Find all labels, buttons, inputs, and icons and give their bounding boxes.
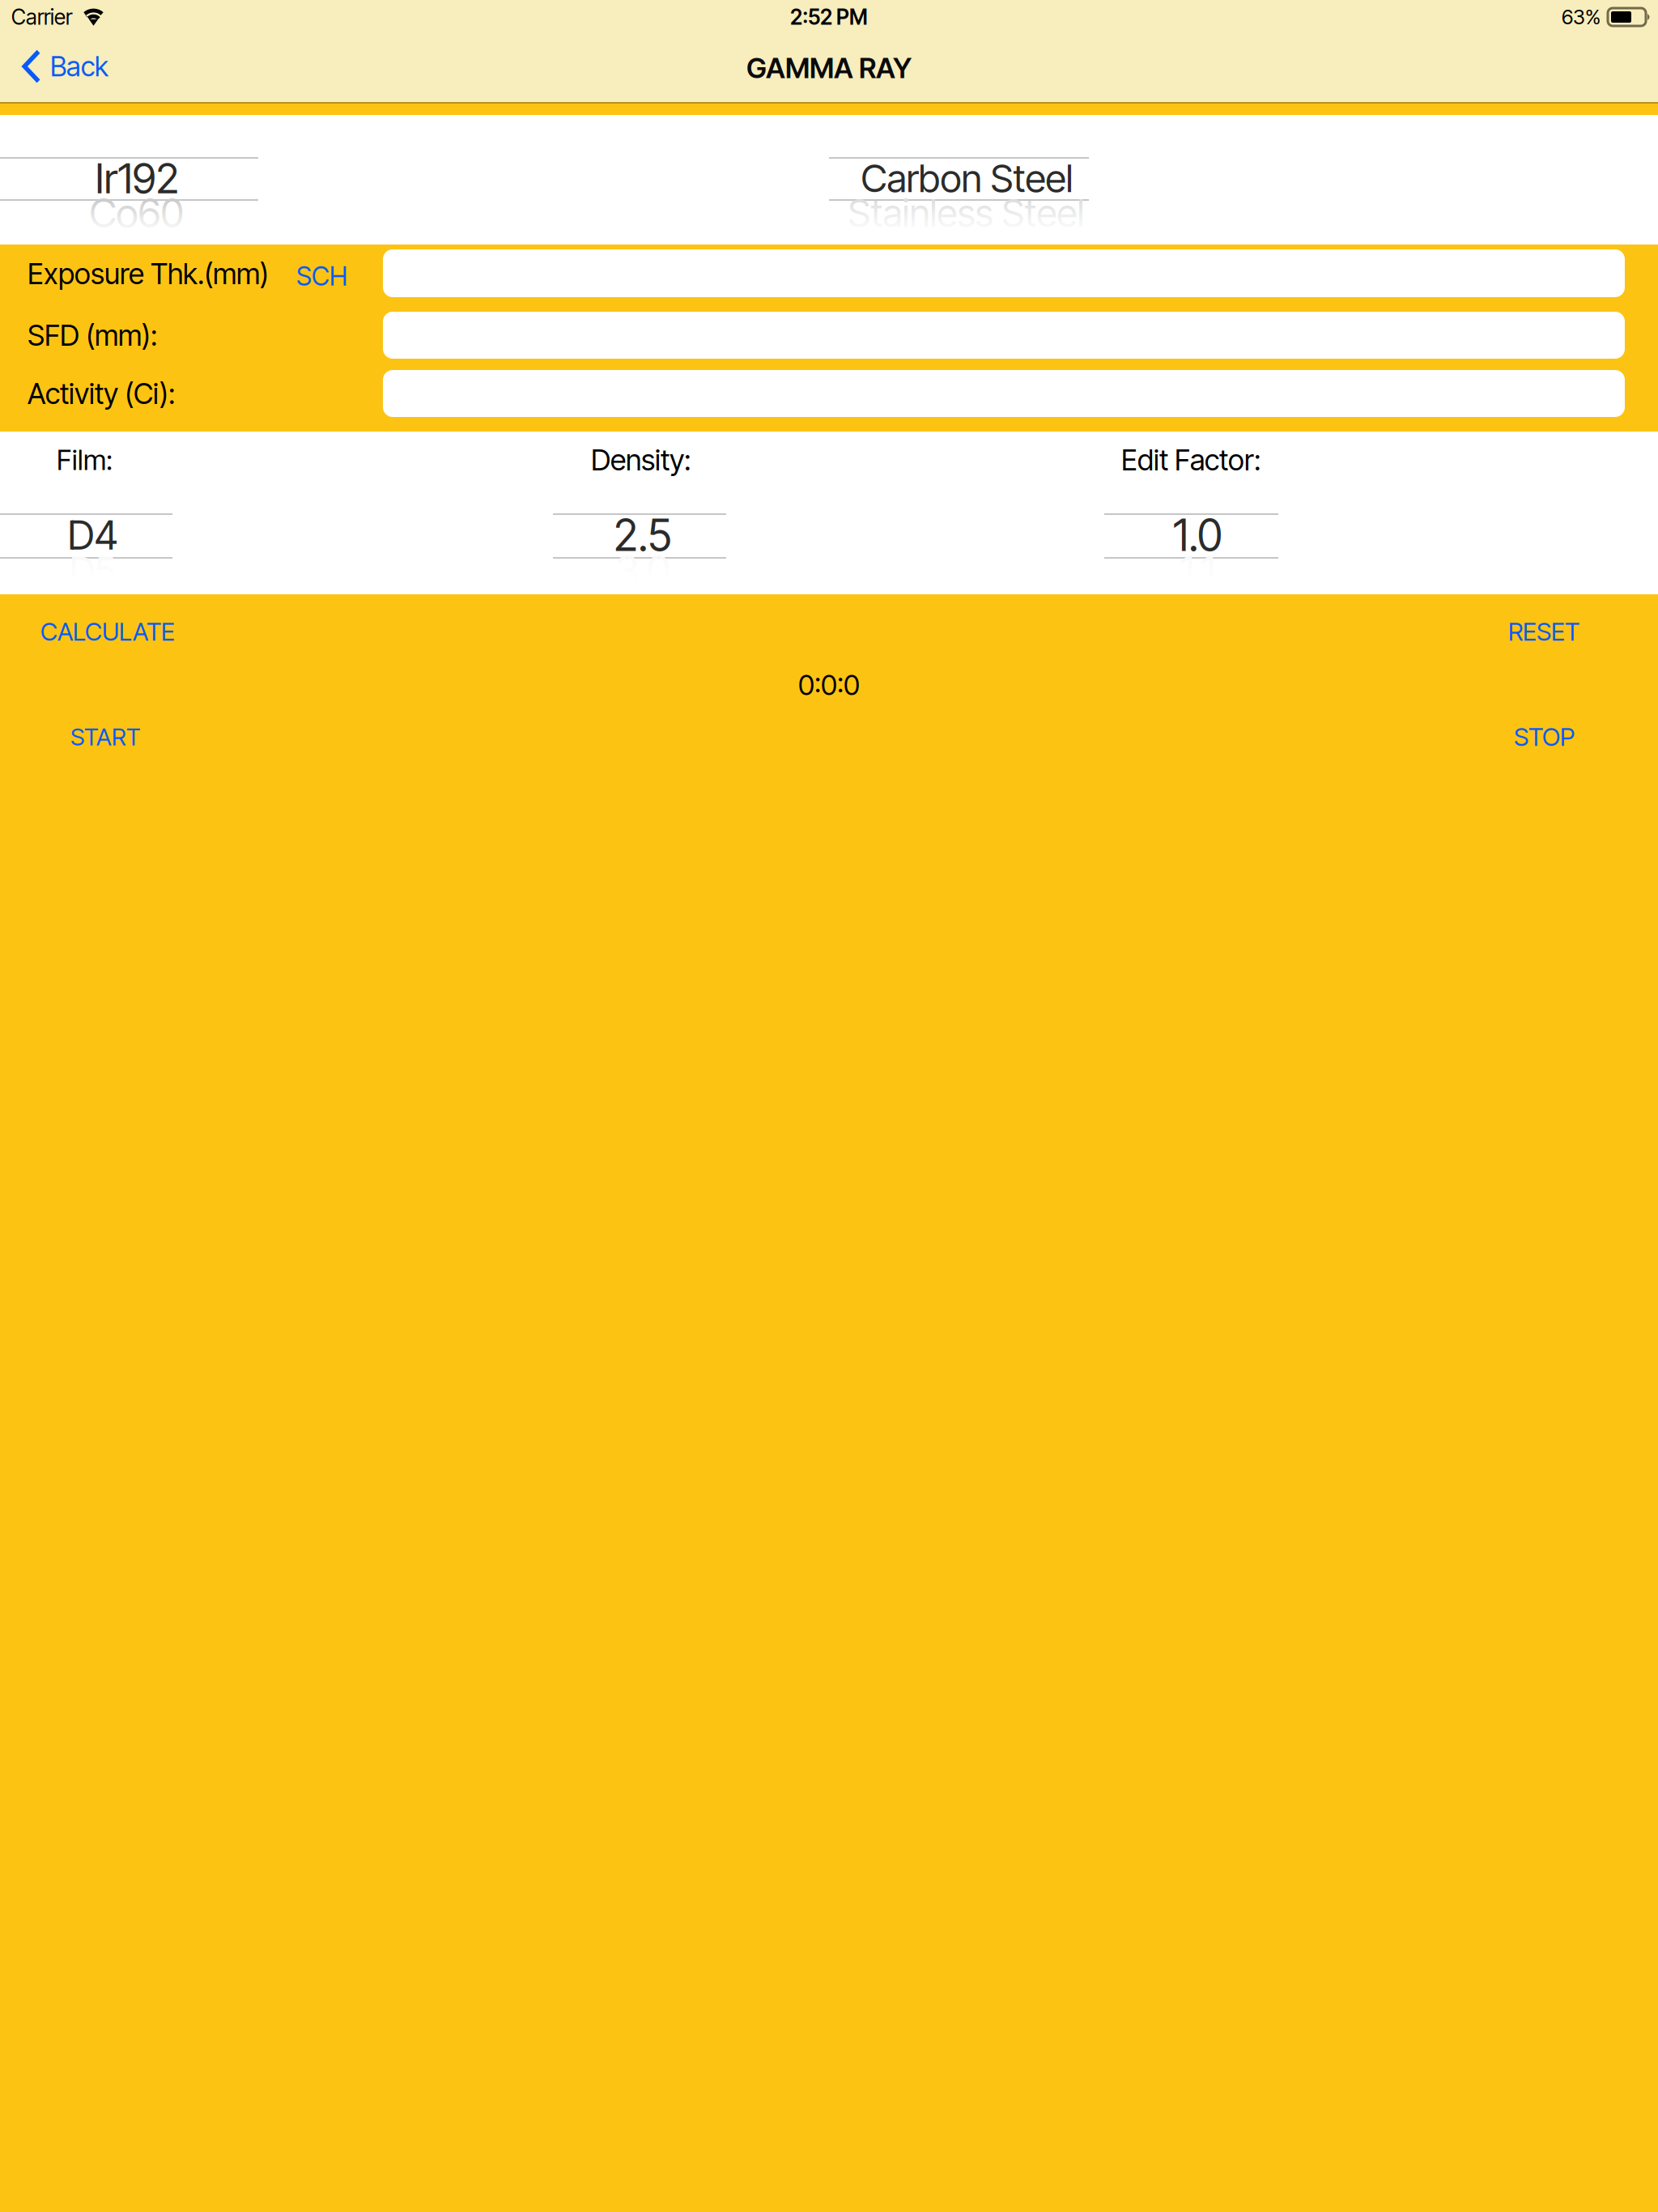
- staticText: Carrier: [11, 4, 72, 30]
- staticText: Film:: [57, 443, 113, 477]
- staticText: Density:: [591, 442, 691, 478]
- staticText: Activity (Ci):: [28, 376, 175, 411]
- button[interactable]: Ir192: [8, 157, 266, 199]
- staticText: RESET: [1508, 616, 1579, 647]
- staticText: STOP: [1514, 722, 1575, 752]
- button[interactable]: STOP: [1514, 713, 1627, 761]
- staticText: Co60: [89, 189, 183, 237]
- button[interactable]: 2.5: [556, 513, 729, 557]
- staticText: START: [70, 722, 141, 751]
- staticText: D5: [70, 548, 116, 593]
- button[interactable]: RESET: [1508, 607, 1622, 656]
- staticText: Carbon Steel: [861, 155, 1073, 201]
- staticText: Ir192: [95, 153, 179, 203]
- staticText: GAMMA RAY: [746, 51, 912, 85]
- staticText: 1.1: [1180, 546, 1216, 595]
- button[interactable]: CALCULATE: [40, 607, 202, 656]
- staticText: CALCULATE: [40, 616, 175, 647]
- staticText: 63%: [1562, 5, 1601, 29]
- button[interactable]: Source to film distance in millimetres: [383, 312, 1625, 359]
- staticText: 1.0: [1173, 509, 1222, 561]
- staticText: 2:52 PM: [790, 4, 868, 30]
- button[interactable]: Back: [21, 45, 191, 87]
- staticText: Exposure Thk.(mm): [28, 256, 269, 291]
- button[interactable]: 1.0: [1111, 513, 1285, 557]
- staticText: SCH: [296, 260, 347, 292]
- button[interactable]: SCH: [296, 252, 369, 300]
- button[interactable]: Activity in curies: [383, 370, 1625, 417]
- button[interactable]: START: [70, 713, 200, 761]
- staticText: 0:0:0: [798, 668, 860, 702]
- staticText: SFD (mm):: [28, 318, 157, 353]
- button[interactable]: Carbon Steel: [837, 157, 1097, 199]
- staticText: 2.5: [614, 509, 672, 561]
- staticText: Back: [50, 50, 108, 83]
- staticText: Edit Factor:: [1121, 442, 1261, 477]
- staticText: D4: [68, 511, 118, 559]
- staticText: 3.0: [615, 546, 670, 595]
- button[interactable]: Exposure thickness in millimetres: [383, 249, 1625, 297]
- staticText: Stainless Steel: [848, 190, 1084, 236]
- button[interactable]: D4: [6, 513, 179, 557]
